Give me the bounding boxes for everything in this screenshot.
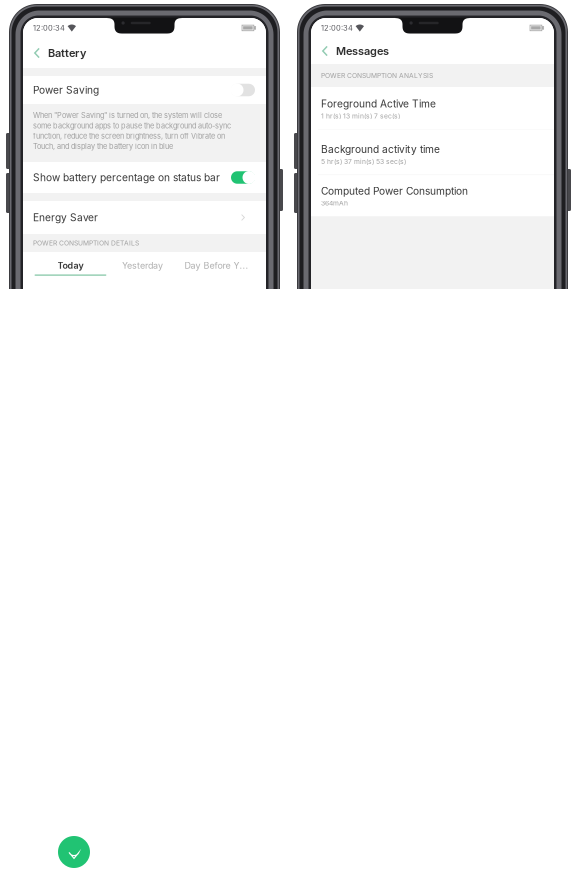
button[interactable]: Back — [317, 39, 333, 63]
staticText: Yesterday — [122, 260, 163, 271]
staticText: 12:00:34 — [321, 23, 353, 32]
staticText: POWER CONSUMPTION ANALYSIS — [321, 71, 433, 80]
staticText: Today — [57, 260, 83, 271]
staticText: Energy Saver — [33, 211, 98, 224]
button[interactable]: Show battery percentage on status bar — [23, 162, 266, 193]
staticText: Power Saving — [33, 84, 99, 96]
button[interactable]: Today — [23, 252, 118, 280]
button[interactable]: Yesterday — [118, 252, 167, 280]
button[interactable]: Power Saving — [23, 76, 266, 104]
staticText: Background activity time — [321, 143, 440, 156]
staticText: 5 hr(s) 37 min(s) 53 sec(s) — [321, 157, 406, 166]
staticText: 364mAh — [321, 199, 348, 207]
staticText: POWER CONSUMPTION DETAILS — [33, 239, 139, 247]
staticText: Day Before Y... — [184, 260, 248, 271]
staticText: Messages — [336, 44, 389, 58]
staticText: 12:00:34 — [33, 23, 65, 32]
button[interactable]: Computed Power Consumption — [311, 175, 554, 216]
button[interactable]: Location — [58, 836, 90, 868]
staticText: Computed Power Consumption — [321, 185, 468, 197]
button[interactable]: Energy Saver — [23, 201, 266, 234]
staticText: When "Power Saving" is turned on, the sy… — [33, 111, 231, 151]
staticText: Battery — [48, 46, 86, 60]
staticText: Show battery percentage on status bar — [33, 171, 220, 184]
staticText: Foreground Active Time — [321, 98, 436, 110]
staticText: 1 hr(s) 13 min(s) 7 sec(s) — [321, 112, 400, 120]
button[interactable]: Back — [29, 39, 45, 67]
button[interactable]: Day Before Y... — [167, 252, 266, 280]
button[interactable]: Foreground Active Time — [311, 87, 554, 129]
button[interactable]: Background activity time — [311, 130, 554, 175]
